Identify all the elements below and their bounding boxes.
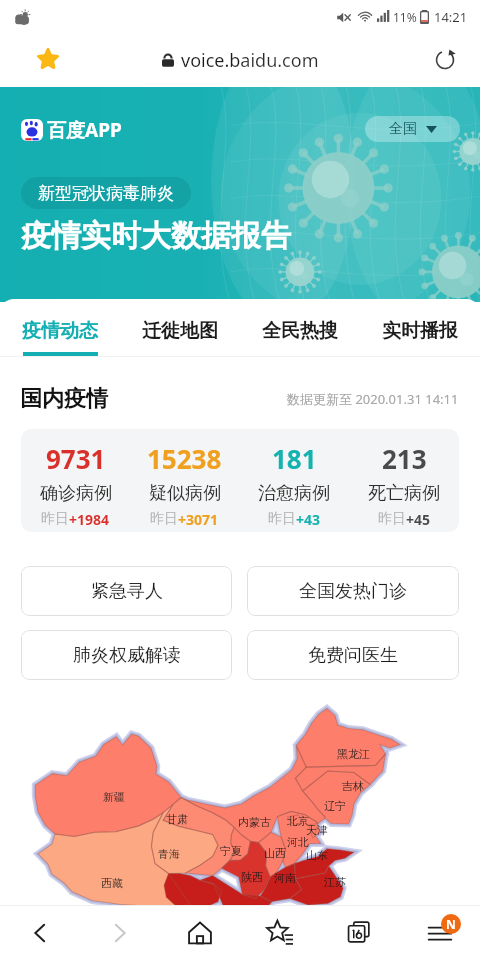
staticText: 内蒙古 — [238, 815, 271, 829]
staticText: 新疆 — [103, 790, 125, 804]
staticText: 全国发热门诊 — [299, 580, 407, 603]
staticText: +45 — [406, 510, 431, 529]
button[interactable]: 全国 — [365, 116, 460, 142]
staticText: voice.baidu.com — [181, 48, 319, 73]
staticText: 山东 — [306, 848, 328, 862]
button[interactable]: 免费问医生 — [247, 630, 459, 680]
button[interactable]: 疫情动态 — [0, 299, 120, 357]
staticText: 昨日 — [268, 510, 296, 528]
staticText: 新型冠状病毒肺炎 — [38, 183, 174, 204]
staticText: 疫情实时大数据报告 — [21, 217, 291, 255]
staticText: 迁徙地图 — [142, 319, 218, 343]
staticText: 陕西 — [241, 870, 263, 884]
staticText: 百度APP — [47, 117, 122, 143]
staticText: 实时播报 — [382, 319, 458, 343]
button[interactable]: Tabs — [320, 906, 400, 960]
staticText: 全国 — [389, 120, 417, 138]
staticText: 213 — [382, 441, 427, 476]
staticText: N — [446, 916, 456, 932]
staticText: 宁夏 — [220, 844, 242, 858]
button[interactable]: Bookmark — [32, 44, 64, 76]
button[interactable]: 全国发热门诊 — [247, 566, 459, 616]
staticText: 吉林 — [342, 779, 364, 793]
staticText: 治愈病例 — [258, 482, 330, 505]
staticText: 国内疫情 — [20, 385, 108, 413]
staticText: 昨日 — [378, 510, 406, 528]
staticText: 15238 — [147, 441, 222, 476]
staticText: 紧急寻人 — [91, 580, 163, 603]
staticText: 昨日 — [150, 510, 178, 528]
button[interactable]: Home — [160, 906, 240, 960]
staticText: 疑似病例 — [149, 482, 221, 505]
staticText: +1984 — [69, 510, 110, 529]
button[interactable]: 肺炎权威解读 — [21, 630, 232, 680]
button[interactable]: Menu — [400, 906, 480, 960]
staticText: 江苏 — [324, 875, 346, 889]
button[interactable]: 实时播报 — [360, 299, 480, 357]
staticText: 西藏 — [101, 876, 123, 890]
staticText: 死亡病例 — [368, 482, 440, 505]
staticText: 甘肃 — [166, 812, 188, 826]
button[interactable]: Favorites — [240, 906, 320, 960]
staticText: +3071 — [178, 510, 219, 529]
staticText: 疫情动态 — [22, 319, 98, 343]
button[interactable]: Forward — [80, 906, 160, 960]
staticText: 河北 — [287, 835, 309, 849]
staticText: 昨日 — [41, 510, 69, 528]
button[interactable]: 全民热搜 — [240, 299, 360, 357]
staticText: 青海 — [158, 847, 180, 861]
button[interactable]: Refresh — [428, 43, 462, 77]
staticText: 确诊病例 — [40, 482, 112, 505]
staticText: 黑龙江 — [337, 747, 370, 761]
staticText: +43 — [296, 510, 321, 529]
staticText: 11% — [393, 9, 417, 25]
button[interactable]: 迁徙地图 — [120, 299, 240, 357]
staticText: 9731 — [46, 441, 106, 476]
staticText: 14:21 — [434, 8, 468, 26]
button[interactable]: 紧急寻人 — [21, 566, 232, 616]
staticText: 河南 — [274, 871, 296, 885]
button[interactable]: Back — [0, 906, 80, 960]
staticText: 181 — [272, 441, 317, 476]
staticText: 天津 — [306, 823, 328, 837]
staticText: 北京 — [287, 814, 309, 828]
staticText: 山西 — [264, 846, 286, 860]
staticText: 数据更新至 2020.01.31 14:11 — [287, 390, 459, 408]
staticText: 辽宁 — [324, 799, 346, 813]
staticText: 肺炎权威解读 — [73, 644, 181, 667]
staticText: 免费问医生 — [308, 644, 398, 667]
staticText: 全民热搜 — [262, 319, 338, 343]
